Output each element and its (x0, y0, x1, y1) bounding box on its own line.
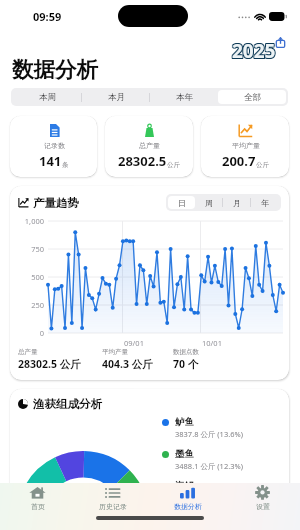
staticText: 404.3 公斤 (102, 357, 153, 371)
staticText: 本年 (176, 92, 193, 103)
staticText: 全部 (244, 92, 261, 103)
staticText: 500 (13, 272, 44, 282)
staticText: 28302.5 (118, 152, 167, 170)
staticText: 数据点数 (173, 348, 199, 356)
staticText: 总产量 (18, 348, 38, 356)
staticText: 公斤 (256, 161, 269, 169)
staticText: 2025 (233, 39, 277, 65)
staticText: 数据分析 (174, 502, 202, 511)
staticText: 3837.8 公斤 (13.6%) (175, 429, 243, 439)
staticText: 2025 (231, 38, 275, 64)
staticText: 年 (261, 198, 269, 208)
staticText: 1,000 (13, 216, 44, 226)
other: 数据分析 (179, 486, 196, 500)
staticText: 2025 (233, 38, 277, 64)
staticText: 09/01 (124, 338, 144, 348)
staticText: 历史记录 (99, 502, 127, 511)
button[interactable]: 设置 (225, 483, 300, 513)
staticText: 平均产量 (232, 141, 260, 150)
button[interactable]: 数据分析 (150, 483, 225, 513)
button[interactable]: Export 2025 (232, 38, 287, 64)
staticText: 70 个 (173, 357, 199, 371)
staticText: 0 (13, 328, 44, 338)
staticText: 首页 (31, 502, 45, 511)
staticText: 周 (205, 198, 213, 208)
staticText: 渔获组成分析 (33, 397, 102, 411)
staticText: 2025 (231, 39, 275, 65)
staticText: 141 (39, 152, 62, 170)
staticText: 2025 (231, 37, 275, 63)
button[interactable]: 记录数 (10, 116, 97, 177)
staticText: 2025 (233, 37, 277, 63)
staticText: 28302.5 公斤 (18, 357, 81, 371)
button[interactable]: 历史记录 (75, 483, 150, 513)
other: 首页 (29, 486, 46, 500)
staticText: 产量趋势 (33, 196, 79, 210)
button[interactable]: 总产量 (105, 116, 193, 177)
button[interactable]: 本年 (150, 90, 218, 104)
staticText: 总产量 (139, 141, 160, 150)
button[interactable]: 日 (168, 196, 195, 209)
staticText: 鲈鱼 (175, 416, 194, 428)
staticText: 10/01 (202, 338, 222, 348)
staticText: 本月 (108, 92, 125, 103)
staticText: 3488.1 公斤 (12.3%) (175, 461, 243, 471)
staticText: 月 (233, 198, 241, 208)
staticText: 200.7 (222, 152, 256, 170)
staticText: 平均产量 (102, 348, 128, 356)
staticText: 2025 (232, 37, 276, 63)
staticText: 250 (13, 300, 44, 310)
button[interactable]: 平均产量 (201, 116, 289, 177)
button[interactable]: 周 (195, 196, 223, 209)
staticText: 2025 (232, 39, 276, 65)
staticText: 墨鱼 (175, 448, 194, 460)
button[interactable]: 月 (223, 196, 251, 209)
staticText: 设置 (256, 502, 270, 511)
button[interactable]: 本周 (13, 90, 82, 104)
other: 历史记录 (104, 486, 121, 500)
staticText: 09:59 (33, 9, 62, 24)
button[interactable]: 年 (251, 196, 279, 209)
button[interactable]: 本月 (82, 90, 150, 104)
staticText: 条 (62, 161, 69, 169)
staticText: 公斤 (167, 161, 180, 169)
staticText: 2025 (232, 38, 276, 64)
staticText: 数据分析 (12, 56, 98, 83)
button[interactable]: 全部 (218, 90, 286, 104)
staticText: 日 (178, 198, 186, 208)
button[interactable]: 首页 (0, 483, 75, 513)
other: 设置 (254, 486, 271, 500)
staticText: 750 (13, 244, 44, 254)
staticText: 海鳗 (175, 480, 194, 492)
staticText: 本周 (39, 92, 56, 103)
staticText: 记录数 (44, 141, 65, 150)
